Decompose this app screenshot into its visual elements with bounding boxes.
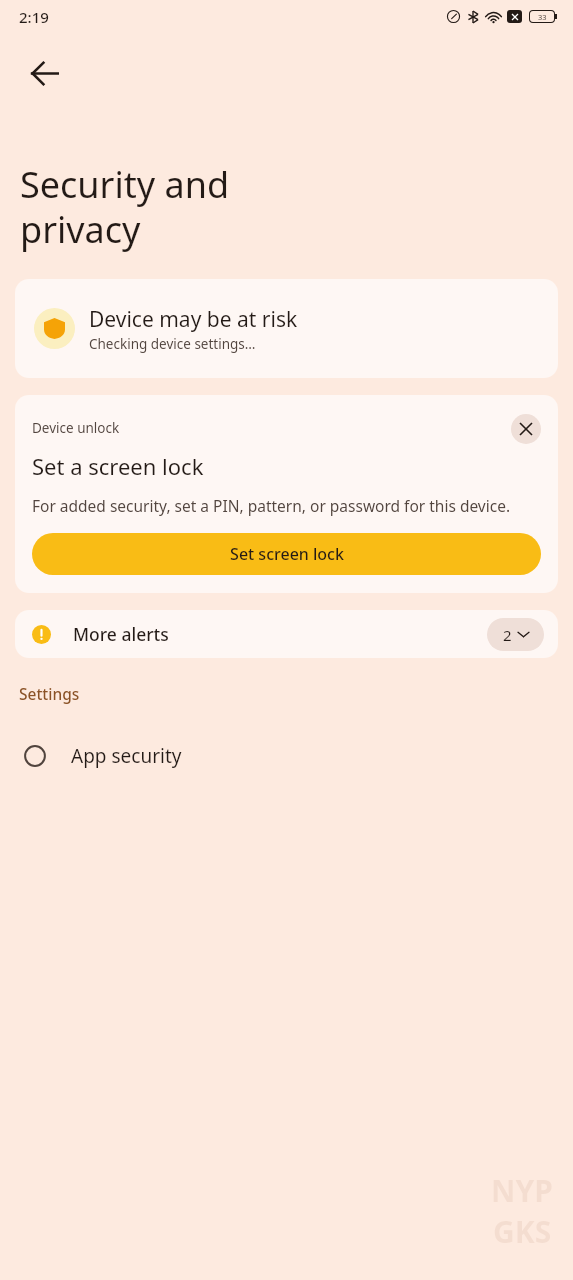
staticText: Set a screen lock xyxy=(32,451,204,481)
staticText: NYP xyxy=(491,1170,553,1211)
button[interactable]: Dismiss xyxy=(511,414,541,444)
button[interactable]: Back xyxy=(14,43,74,103)
staticText: 33 xyxy=(538,12,547,22)
staticText: 2:19 xyxy=(19,7,49,27)
staticText: Security and privacy xyxy=(20,160,230,253)
staticText: Checking device settings… xyxy=(89,335,256,353)
button[interactable]: App security xyxy=(0,726,573,786)
button[interactable]: More alerts xyxy=(15,610,558,658)
staticText: 2 xyxy=(503,625,512,645)
staticText: Set screen lock xyxy=(230,543,344,565)
staticText: Settings xyxy=(19,683,80,704)
staticText: Device unlock xyxy=(32,419,511,437)
staticText: GKS xyxy=(493,1211,552,1252)
button[interactable]: Device may be at risk xyxy=(15,279,558,378)
staticText: App security xyxy=(71,743,182,769)
button[interactable]: Set screen lock xyxy=(32,533,541,575)
button[interactable]: 2 xyxy=(487,618,544,651)
staticText: Device may be at risk xyxy=(89,305,298,334)
staticText: For added security, set a PIN, pattern, … xyxy=(32,495,511,516)
staticText: More alerts xyxy=(73,622,487,646)
